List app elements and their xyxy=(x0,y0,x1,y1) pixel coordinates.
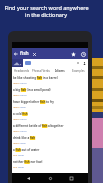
button[interactable]: a big fish (in a small pond) xyxy=(12,86,88,98)
staticText: fish xyxy=(20,50,29,57)
staticText: Examples xyxy=(72,69,85,73)
staticText: a different kettle of fish altogether xyxy=(13,124,64,128)
staticText: Idioms xyxy=(55,69,65,73)
button[interactable]: Search history xyxy=(79,50,87,58)
staticText: idiom noun xyxy=(13,129,27,132)
button[interactable]: Back xyxy=(24,174,33,183)
staticText: fish noun xyxy=(13,153,25,156)
staticText: in the dictionary xyxy=(25,11,67,18)
staticText: a cold fish xyxy=(13,112,28,116)
button[interactable]: neither fish nor fowl xyxy=(12,158,88,170)
button[interactable]: a cold fish xyxy=(12,110,88,122)
staticText: idiom noun xyxy=(13,81,27,84)
staticText: Find your search word anywhere xyxy=(4,4,89,11)
button[interactable]: Back xyxy=(12,50,20,58)
button[interactable]: Examples xyxy=(69,67,88,74)
button[interactable]: Phrasal Verbs xyxy=(31,67,50,74)
button[interactable]: Recent apps xyxy=(67,174,76,183)
staticText: Phrasal Verbs xyxy=(32,69,50,73)
button[interactable]: Close ad xyxy=(12,59,88,67)
staticText: idiom verb xyxy=(13,141,26,144)
button[interactable]: Headwords xyxy=(12,67,31,74)
button[interactable]: have bigger/other fish to fry xyxy=(12,98,88,110)
staticText: Headwords xyxy=(14,69,29,73)
staticText: a fish out of water xyxy=(13,148,40,152)
staticText: idiom noun xyxy=(13,117,27,120)
staticText: idiom verb xyxy=(13,105,26,108)
button[interactable]: be like shooting fish in a barrel xyxy=(12,74,88,86)
staticText: have bigger/other fish to fry xyxy=(13,100,54,104)
button[interactable]: Idioms xyxy=(50,67,69,74)
staticText: be like shooting fish in a barrel xyxy=(13,76,58,80)
button[interactable]: drink like a fish xyxy=(12,134,88,146)
staticText: fish noun xyxy=(13,165,25,168)
button[interactable]: Close ad xyxy=(75,60,81,66)
button[interactable]: Favourites xyxy=(69,50,77,58)
staticText: neither fish nor fowl xyxy=(13,160,43,164)
button[interactable]: Home xyxy=(46,174,55,183)
staticText: a big fish (in a small pond) xyxy=(13,88,51,92)
button[interactable]: Clear search xyxy=(30,50,38,58)
staticText: drink like a fish xyxy=(13,136,36,140)
button[interactable]: a different kettle of fish altogether xyxy=(12,122,88,134)
staticText: idiom noun xyxy=(13,93,27,96)
button[interactable]: a fish out of water xyxy=(12,146,88,158)
